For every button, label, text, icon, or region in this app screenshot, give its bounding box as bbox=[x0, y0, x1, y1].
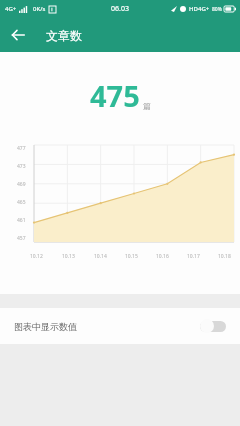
button[interactable]: 图表中显示数值 bbox=[0, 308, 240, 344]
staticText: 477 bbox=[17, 145, 26, 152]
staticText: 4G+ bbox=[5, 5, 17, 13]
staticText: 457 bbox=[17, 235, 26, 242]
staticText: 475 bbox=[90, 76, 140, 115]
staticText: 10.13 bbox=[62, 253, 75, 260]
staticText: 10.12 bbox=[30, 253, 43, 260]
staticText: 06.03 bbox=[111, 4, 129, 14]
staticText: 80% bbox=[212, 6, 222, 13]
staticText: 10.17 bbox=[187, 253, 200, 260]
staticText: 篇 bbox=[143, 101, 151, 111]
staticText: 10.14 bbox=[94, 253, 107, 260]
staticText: 10.16 bbox=[156, 253, 169, 260]
staticText: 10.15 bbox=[125, 253, 138, 260]
staticText: 469 bbox=[17, 181, 26, 188]
staticText: 4G+ bbox=[198, 5, 210, 13]
staticText: 0K/s bbox=[33, 5, 46, 13]
staticText: 文章数 bbox=[46, 28, 82, 43]
staticText: 465 bbox=[17, 199, 26, 206]
staticText: 10.18 bbox=[218, 253, 231, 260]
staticText: 473 bbox=[17, 163, 26, 170]
button[interactable]: Back bbox=[4, 21, 32, 49]
staticText: 461 bbox=[17, 217, 26, 224]
staticText: HD bbox=[189, 5, 198, 13]
staticText: 图表中显示数值 bbox=[14, 321, 77, 332]
button[interactable]: Show values in chart toggle bbox=[200, 319, 226, 333]
